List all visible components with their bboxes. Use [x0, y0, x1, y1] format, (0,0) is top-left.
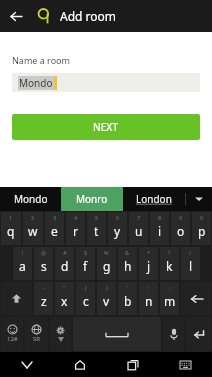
- button[interactable]: /: [181, 247, 200, 280]
- button[interactable]: Symbols: [1, 317, 23, 351]
- staticText: e: [51, 223, 58, 239]
- staticText: *: [147, 249, 151, 256]
- button[interactable]: 7: [129, 212, 148, 245]
- staticText: k: [166, 258, 173, 274]
- staticText: 4: [74, 214, 78, 221]
- staticText: NEXT: [93, 120, 119, 134]
- staticText: r: [73, 223, 78, 239]
- button[interactable]: *: [139, 247, 158, 280]
- button[interactable]: Switch keyboard: [159, 352, 212, 377]
- button[interactable]: @: [34, 247, 53, 280]
- button[interactable]: ?: [160, 247, 179, 280]
- staticText: x: [61, 293, 68, 309]
- staticText: 0: [200, 214, 204, 221]
- button[interactable]: Mondo: [12, 73, 200, 92]
- button[interactable]: Shift: [1, 282, 32, 315]
- button[interactable]: Home: [53, 352, 106, 377]
- staticText: ": [63, 284, 66, 291]
- staticText: m: [164, 293, 176, 309]
- button[interactable]: ": [55, 282, 74, 315]
- button[interactable]: Settings: [50, 317, 71, 351]
- button[interactable]: 6: [108, 212, 127, 245]
- staticText: Add room: [60, 8, 117, 24]
- button[interactable]: Hide keyboard: [0, 352, 53, 377]
- button[interactable]: #: [55, 247, 74, 280]
- button[interactable]: 2: [23, 212, 43, 245]
- staticText: 1: [9, 214, 13, 221]
- staticText: w: [28, 223, 38, 239]
- button[interactable]: $: [76, 247, 95, 280]
- staticText: ): [106, 284, 108, 291]
- button[interactable]: 3: [45, 212, 64, 245]
- staticText: 9: [179, 214, 183, 221]
- button[interactable]: &: [118, 247, 137, 280]
- staticText: 7: [137, 214, 141, 221]
- staticText: j: [147, 258, 151, 274]
- button[interactable]: Space: [73, 317, 161, 351]
- staticText: Mondo: [19, 76, 53, 90]
- button[interactable]: 5: [87, 212, 106, 245]
- button[interactable]: Backspace: [181, 282, 211, 315]
- button[interactable]: :: [139, 282, 158, 315]
- button[interactable]: 9: [171, 212, 190, 245]
- staticText: i: [158, 223, 162, 239]
- staticText: 8: [158, 214, 162, 221]
- staticText: 6: [116, 214, 120, 221]
- staticText: f: [83, 258, 88, 274]
- staticText: p: [198, 223, 206, 239]
- staticText: #: [63, 249, 67, 256]
- button[interactable]: ): [97, 282, 116, 315]
- staticText: o: [177, 223, 185, 239]
- button[interactable]: %: [97, 247, 116, 280]
- staticText: :: [148, 284, 150, 291]
- staticText: l: [189, 258, 193, 274]
- button[interactable]: Voice input: [163, 317, 184, 351]
- staticText: z: [41, 293, 47, 309]
- staticText: %: [104, 249, 109, 256]
- button[interactable]: ': [118, 282, 137, 315]
- staticText: n: [145, 293, 153, 309]
- staticText: $: [84, 249, 88, 256]
- button[interactable]: London: [123, 187, 185, 211]
- staticText: s: [41, 258, 47, 274]
- staticText: u: [135, 223, 143, 239]
- button[interactable]: !: [13, 247, 32, 280]
- button[interactable]: 4: [66, 212, 85, 245]
- staticText: b: [124, 293, 132, 309]
- staticText: London: [136, 192, 172, 206]
- staticText: v: [103, 293, 110, 309]
- button[interactable]: Mondo: [0, 187, 61, 211]
- staticText: ': [127, 284, 129, 291]
- button[interactable]: Back: [0, 0, 32, 32]
- button[interactable]: Enter: [186, 317, 211, 351]
- staticText: ;: [169, 284, 171, 291]
- button[interactable]: More suggestions: [186, 187, 212, 211]
- staticText: c: [83, 293, 89, 309]
- staticText: t: [94, 223, 99, 239]
- button[interactable]: Monro: [61, 187, 123, 211]
- button[interactable]: ;: [160, 282, 179, 315]
- button[interactable]: 0: [192, 212, 211, 245]
- staticText: (: [85, 284, 87, 291]
- staticText: Monro: [76, 192, 108, 206]
- button[interactable]: Language: [25, 317, 48, 351]
- button[interactable]: NEXT: [12, 114, 200, 140]
- staticText: Name a room: [12, 54, 70, 66]
- button[interactable]: Recents: [106, 352, 159, 377]
- staticText: ?: [168, 249, 171, 256]
- staticText: /: [189, 249, 192, 256]
- staticText: h: [124, 258, 132, 274]
- staticText: &: [125, 249, 130, 256]
- staticText: 2: [31, 214, 35, 221]
- button[interactable]: -: [34, 282, 53, 315]
- staticText: q: [7, 223, 15, 239]
- button[interactable]: 1: [1, 212, 21, 245]
- staticText: y: [114, 223, 121, 239]
- staticText: -: [43, 284, 45, 291]
- button[interactable]: 8: [150, 212, 169, 245]
- staticText: a: [19, 258, 26, 274]
- staticText: d: [61, 258, 69, 274]
- staticText: g: [103, 258, 111, 274]
- button[interactable]: (: [76, 282, 95, 315]
- staticText: !: [22, 249, 24, 256]
